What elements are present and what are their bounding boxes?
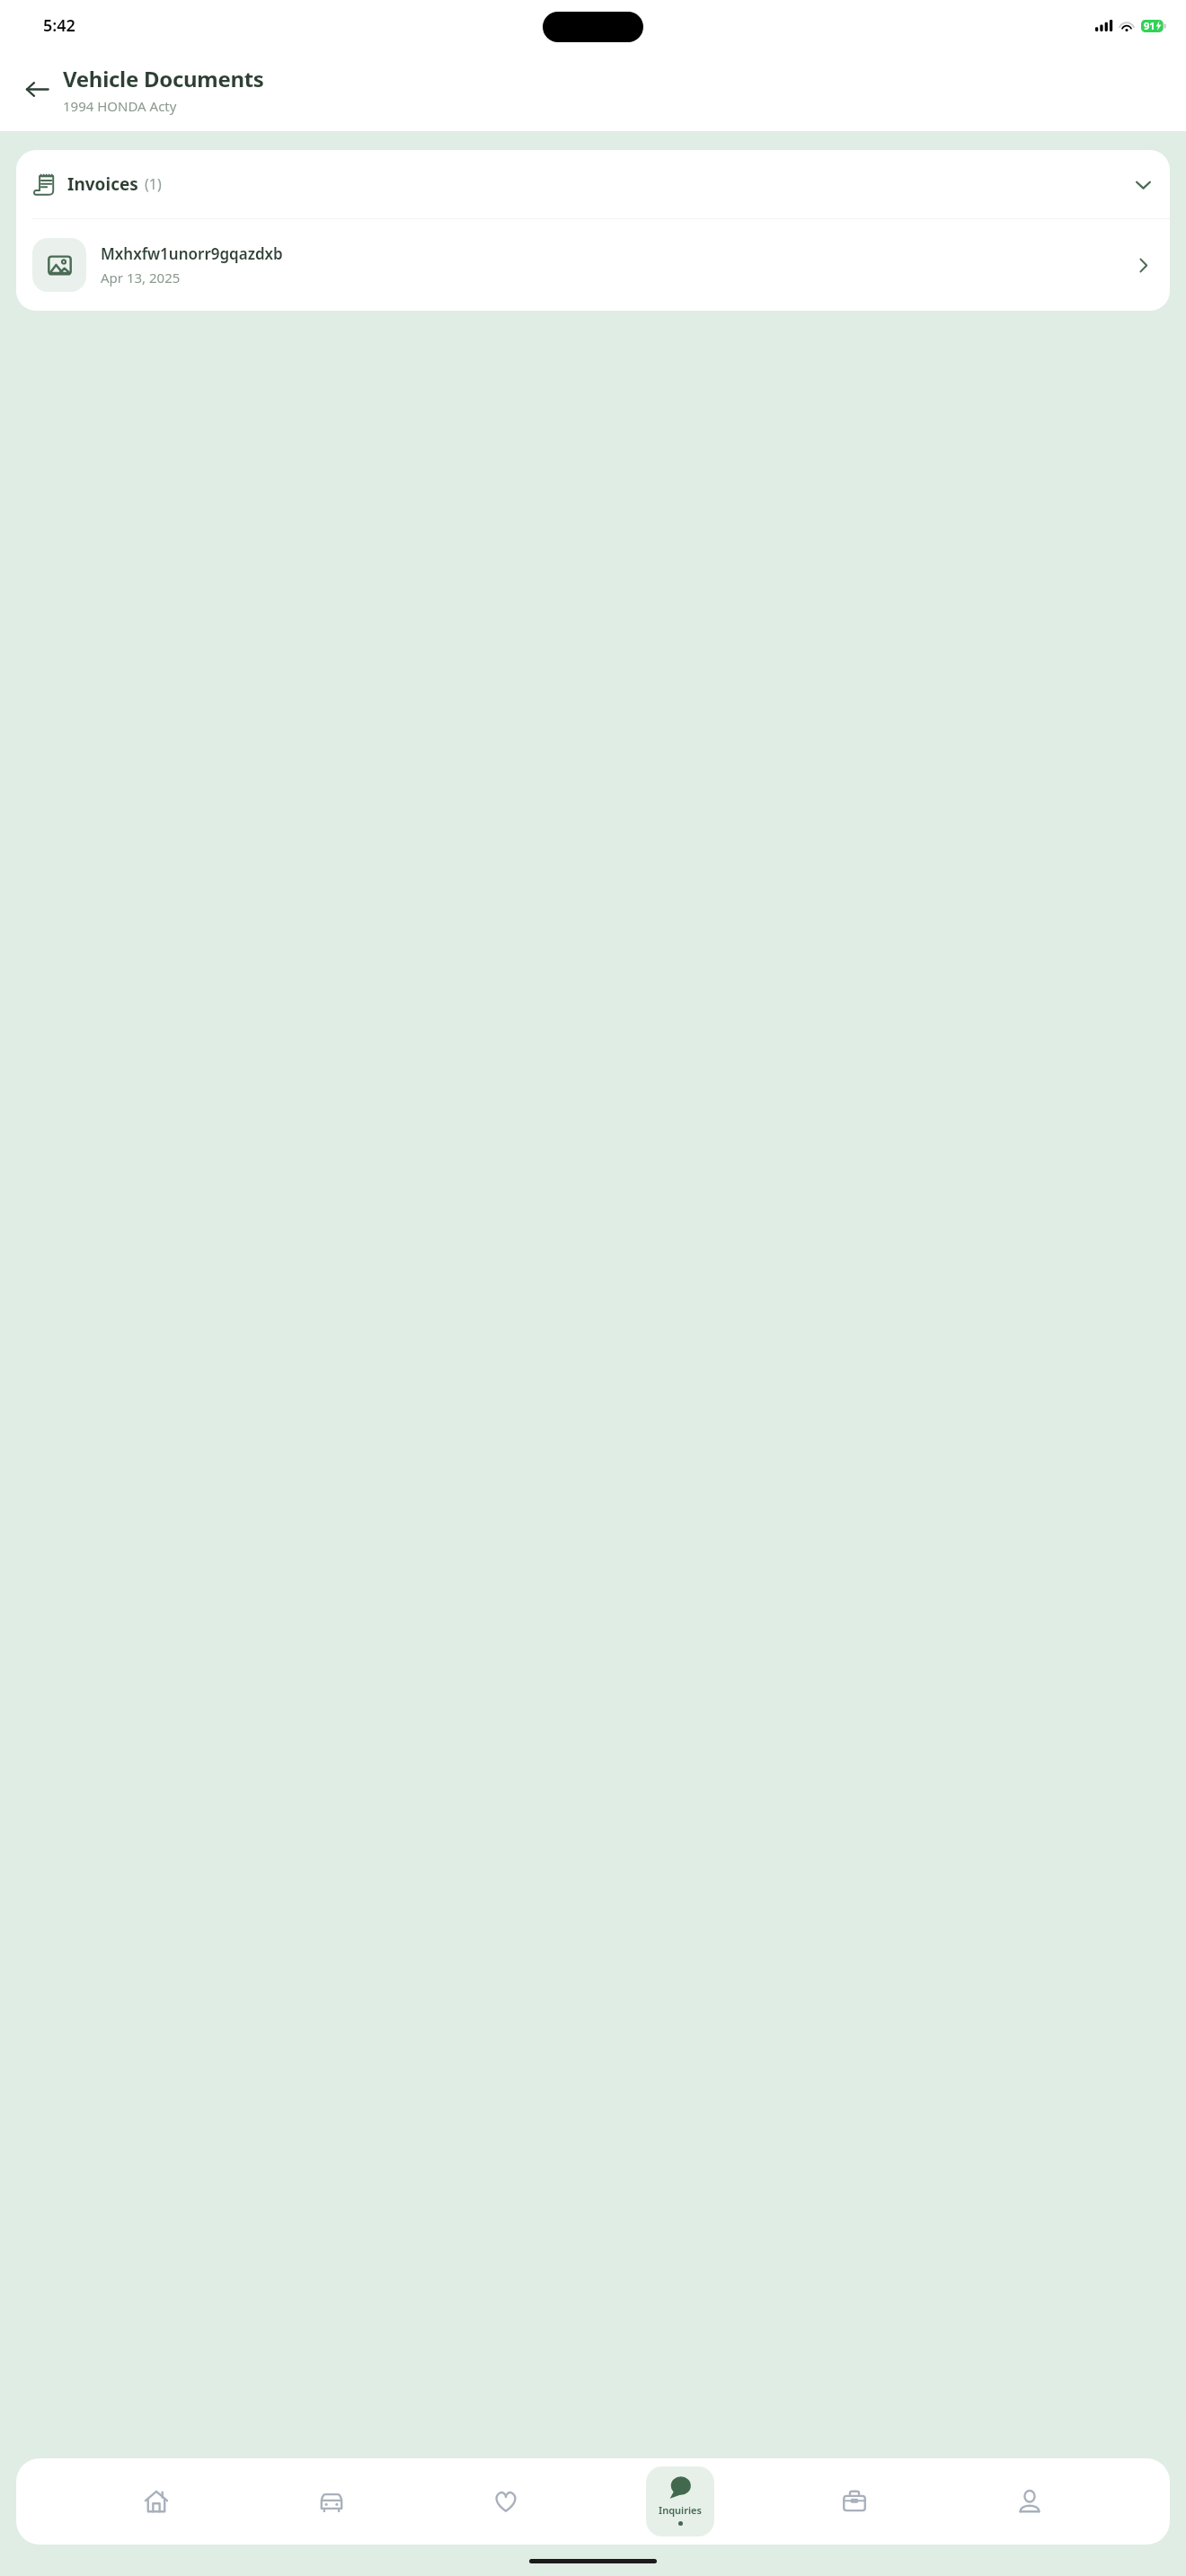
button[interactable]: Mxhxfw1unorr9gqazdxb: [16, 219, 1170, 311]
staticText: Apr 13, 2025: [101, 269, 181, 287]
button[interactable]: Jobs: [820, 2466, 889, 2536]
button[interactable]: Profile: [996, 2466, 1064, 2536]
staticText: Mxhxfw1unorr9gqazdxb: [101, 243, 283, 264]
staticText: 5:42: [43, 14, 75, 37]
button[interactable]: Favorites: [472, 2466, 540, 2536]
staticText: (1): [145, 174, 162, 194]
button[interactable]: Invoices: [16, 150, 1170, 218]
button[interactable]: Back: [16, 68, 58, 110]
staticText: 91: [1144, 19, 1155, 32]
staticText: Inquiries: [659, 2503, 702, 2517]
staticText: Vehicle Documents: [63, 64, 264, 93]
button[interactable]: Home: [122, 2466, 190, 2536]
button[interactable]: Inquiries: [646, 2466, 714, 2536]
staticText: Invoices: [67, 172, 138, 196]
staticText: 1994 HONDA Acty: [63, 97, 177, 115]
button[interactable]: Vehicles: [297, 2466, 366, 2536]
